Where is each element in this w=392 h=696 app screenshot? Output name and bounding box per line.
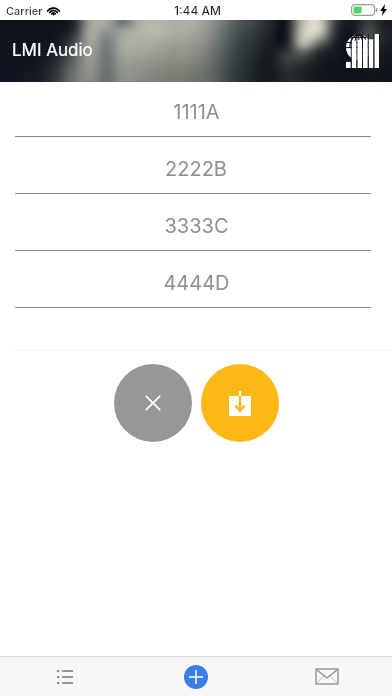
staticText: 3333C: [164, 214, 229, 238]
other: Download: [229, 390, 251, 416]
staticText: Carrier: [6, 4, 43, 17]
other: Logo: [346, 34, 380, 68]
other: Mail: [316, 669, 338, 684]
staticText: 1:44 AM: [174, 3, 222, 18]
button[interactable]: Download: [201, 364, 279, 442]
other: Add: [184, 665, 208, 689]
button[interactable]: Add: [130, 657, 261, 696]
other: Cancel: [143, 393, 163, 413]
other: List: [57, 670, 73, 683]
button[interactable]: List: [0, 657, 130, 696]
button[interactable]: Cancel: [114, 364, 192, 442]
staticText: 2222B: [165, 157, 227, 181]
staticText: LMI Audio: [12, 40, 93, 61]
button[interactable]: Mail: [261, 657, 392, 696]
staticText: 4444D: [163, 271, 230, 295]
staticText: 1111A: [173, 100, 220, 124]
